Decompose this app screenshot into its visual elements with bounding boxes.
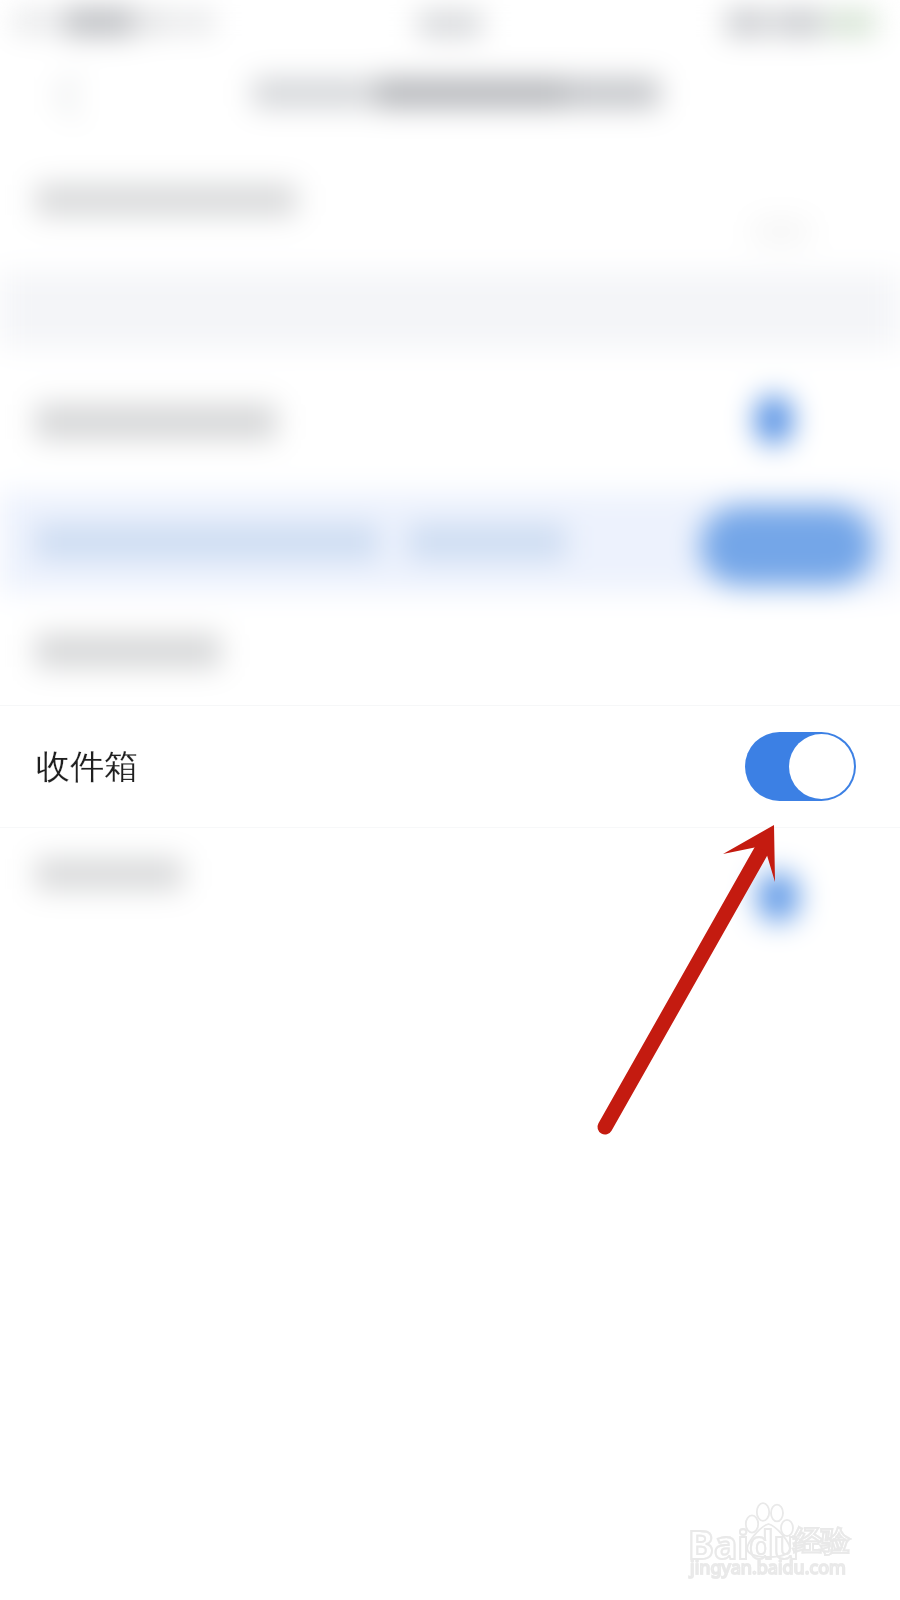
button[interactable] <box>0 368 900 492</box>
staticText: Baidu <box>688 1517 799 1570</box>
button[interactable] <box>0 150 900 268</box>
staticText: 经验 <box>793 1524 849 1559</box>
staticText: jingyan.baidu.com <box>690 1555 846 1580</box>
button[interactable]: 收件箱 <box>0 706 900 827</box>
button[interactable] <box>0 830 900 948</box>
button[interactable] <box>0 492 900 592</box>
button[interactable]: Back <box>0 40 120 136</box>
button[interactable] <box>0 592 900 705</box>
staticText: 收件箱 <box>36 745 138 788</box>
